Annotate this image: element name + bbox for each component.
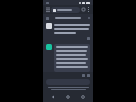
button[interactable]: Copy response xyxy=(54,44,90,72)
button[interactable]: Like xyxy=(82,74,85,77)
button[interactable]: Copy xyxy=(87,37,90,40)
button[interactable]: New chat xyxy=(81,7,86,12)
button[interactable]: Back xyxy=(48,92,58,102)
button[interactable]: Recents xyxy=(78,92,88,102)
button[interactable]: More options xyxy=(86,7,91,12)
button[interactable]: Menu xyxy=(45,7,51,13)
button[interactable]: Dislike xyxy=(87,74,90,77)
button[interactable]: Home xyxy=(63,92,73,102)
button[interactable] xyxy=(51,7,80,13)
